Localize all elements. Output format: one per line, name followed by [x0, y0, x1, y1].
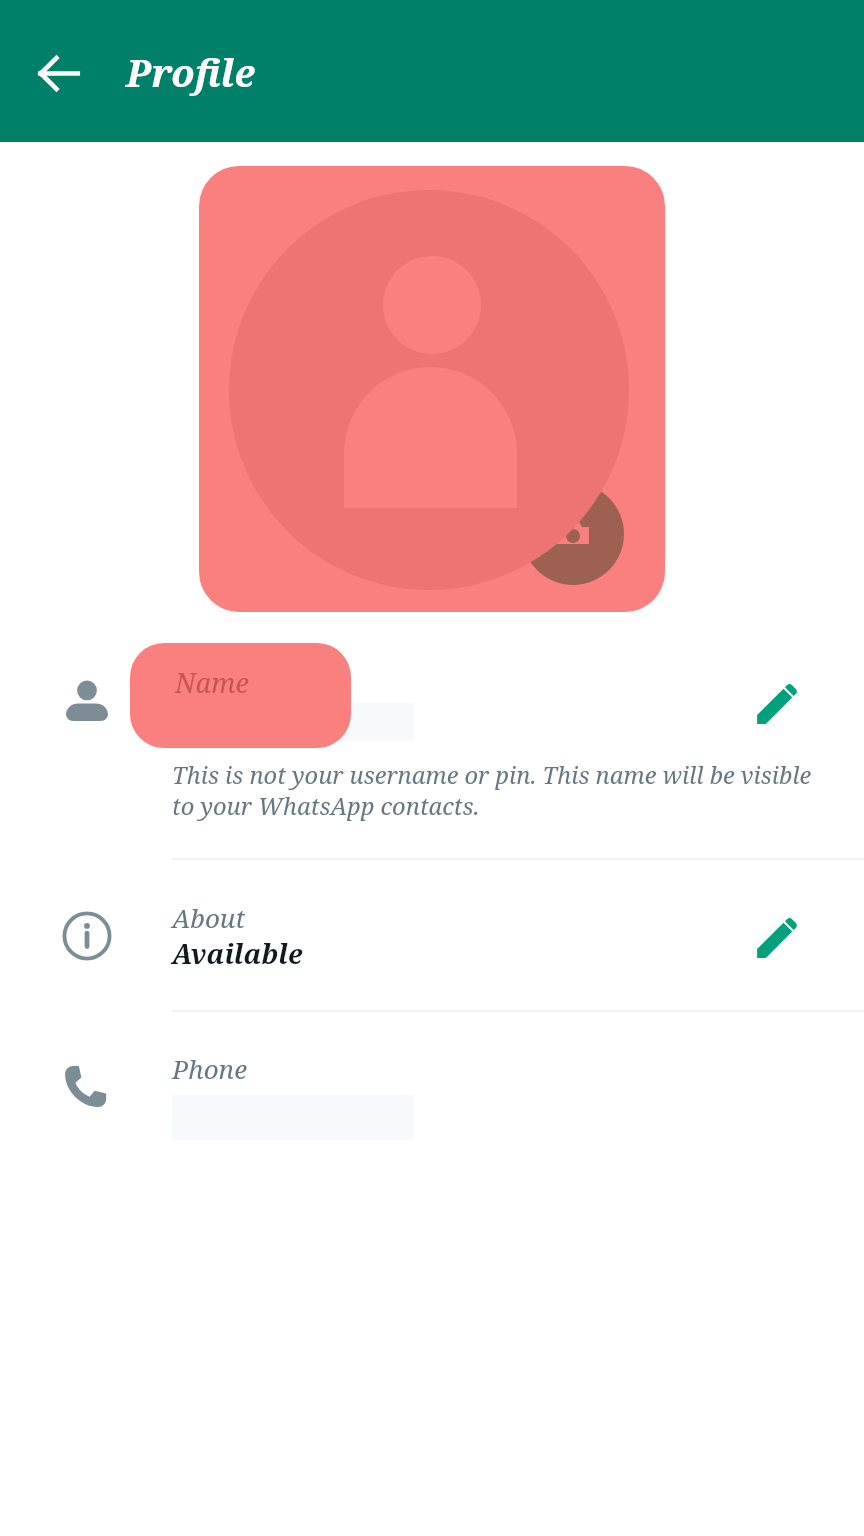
- button[interactable]: Change profile photo: [199, 166, 665, 612]
- staticText: Name: [175, 664, 249, 701]
- button[interactable]: Edit name: [738, 662, 818, 742]
- button[interactable]: Edit about: [738, 896, 818, 976]
- staticText: This is not your username or pin. This n…: [172, 759, 820, 821]
- button[interactable]: Back: [24, 39, 92, 107]
- staticText: Profile: [126, 46, 255, 98]
- button[interactable]: Phone: [0, 1012, 864, 1162]
- staticText: Available: [172, 935, 303, 972]
- button[interactable]: About: [0, 860, 864, 1010]
- button[interactable]: Name: [0, 628, 864, 764]
- staticText: About: [172, 900, 246, 935]
- staticText: Phone: [172, 1051, 248, 1086]
